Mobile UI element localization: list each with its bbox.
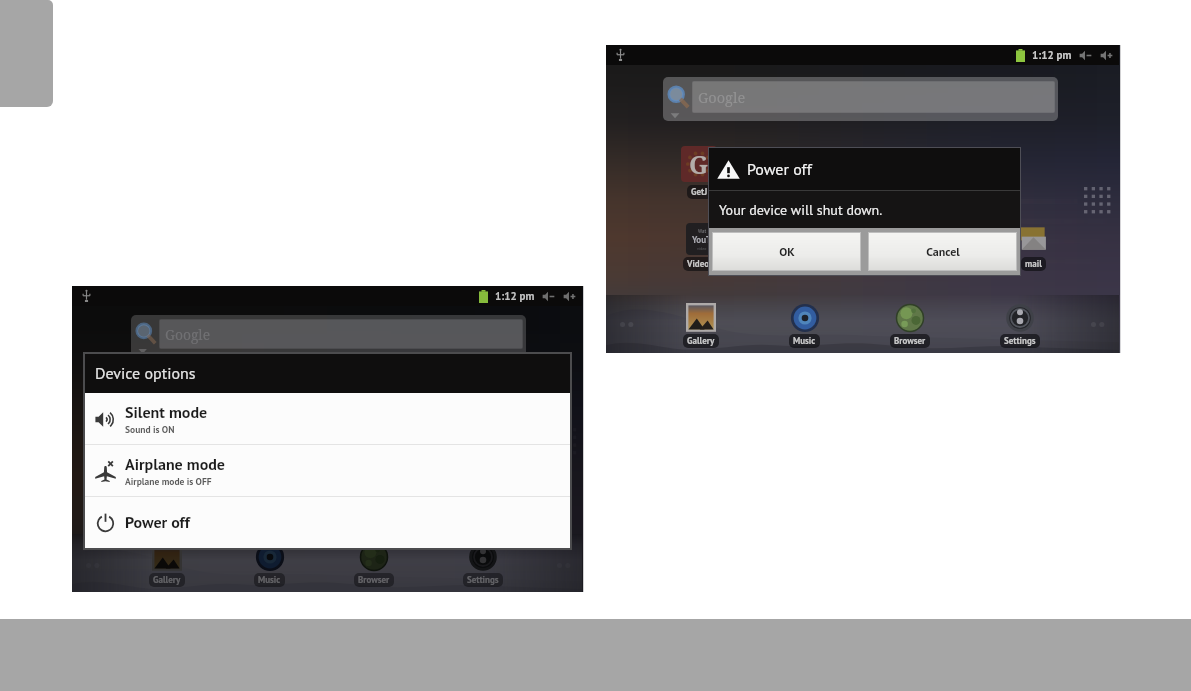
button[interactable]: Google search xyxy=(131,315,526,357)
staticText: Settings xyxy=(1004,335,1036,347)
staticText: G xyxy=(155,388,175,422)
staticText: Airplane mode is OFF xyxy=(125,475,212,487)
other: All apps xyxy=(549,427,578,456)
button[interactable]: Airplane mode xyxy=(85,445,570,496)
staticText: video xyxy=(697,246,707,251)
staticText: G xyxy=(689,147,709,181)
other: Volume up xyxy=(1100,49,1113,62)
staticText: GetJ xyxy=(691,186,708,198)
button[interactable]: OK xyxy=(713,233,860,270)
staticText: Google xyxy=(698,87,746,107)
staticText: Cancel xyxy=(926,244,960,260)
staticText: Wat xyxy=(164,469,173,475)
staticText: Settings xyxy=(467,574,499,586)
other: Volume down xyxy=(1079,49,1092,62)
staticText: Airplane mode xyxy=(125,454,226,475)
other: USB connected xyxy=(80,289,93,302)
staticText: YouT xyxy=(158,475,178,487)
other: Volume up xyxy=(563,290,576,303)
button[interactable]: Power off xyxy=(85,497,570,548)
staticText: 1:12 pm xyxy=(495,289,535,303)
staticText: Browser xyxy=(894,335,926,347)
staticText: Your device will shut down. xyxy=(719,201,883,219)
staticText: 1:12 pm xyxy=(1032,48,1072,62)
staticText: Music xyxy=(793,335,816,347)
staticText: Gallery xyxy=(687,335,715,347)
staticText: Silent mode xyxy=(125,402,208,423)
staticText: Google xyxy=(165,325,211,344)
button[interactable]: Cancel xyxy=(869,233,1016,270)
staticText: Power off xyxy=(125,512,190,533)
button[interactable]: Gallery xyxy=(683,303,719,348)
staticText: GetJ xyxy=(157,427,174,439)
button[interactable]: Music xyxy=(254,542,285,587)
button[interactable]: Browser xyxy=(354,542,394,587)
staticText: YouT xyxy=(692,234,712,246)
button[interactable]: Settings xyxy=(1000,303,1040,348)
button[interactable]: Gallery xyxy=(149,542,185,587)
button[interactable]: Google search xyxy=(663,77,1058,121)
staticText: mail xyxy=(1025,258,1042,270)
staticText: Power off xyxy=(747,159,812,180)
staticText: Browser xyxy=(358,574,390,586)
other: USB connected xyxy=(614,48,627,61)
button[interactable]: Music xyxy=(789,303,820,348)
staticText: Gallery xyxy=(153,574,181,586)
staticText: Device options xyxy=(95,363,196,384)
other: Volume down xyxy=(542,290,555,303)
button[interactable]: Silent mode xyxy=(85,393,570,444)
staticText: OK xyxy=(779,244,795,260)
button[interactable]: Browser xyxy=(890,303,930,348)
staticText: Video P xyxy=(687,258,717,270)
staticText: Sound is ON xyxy=(125,423,175,435)
other: All apps xyxy=(1083,186,1112,215)
button[interactable]: Settings xyxy=(463,542,503,587)
staticText: Music xyxy=(258,574,281,586)
staticText: Wat xyxy=(698,228,707,234)
